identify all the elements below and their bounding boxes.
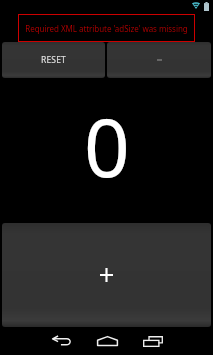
button[interactable]: Back — [49, 330, 73, 352]
staticText: 0 — [84, 91, 130, 200]
button[interactable]: RESET — [2, 42, 105, 78]
staticText: RESET — [41, 54, 66, 66]
button[interactable]: Recent apps — [141, 330, 165, 352]
button[interactable]: Home — [95, 330, 119, 352]
button[interactable]: Decrement — [107, 42, 211, 78]
button[interactable]: Increment — [2, 223, 211, 327]
staticText: Required XML attribute 'adSize' was miss… — [25, 23, 188, 34]
